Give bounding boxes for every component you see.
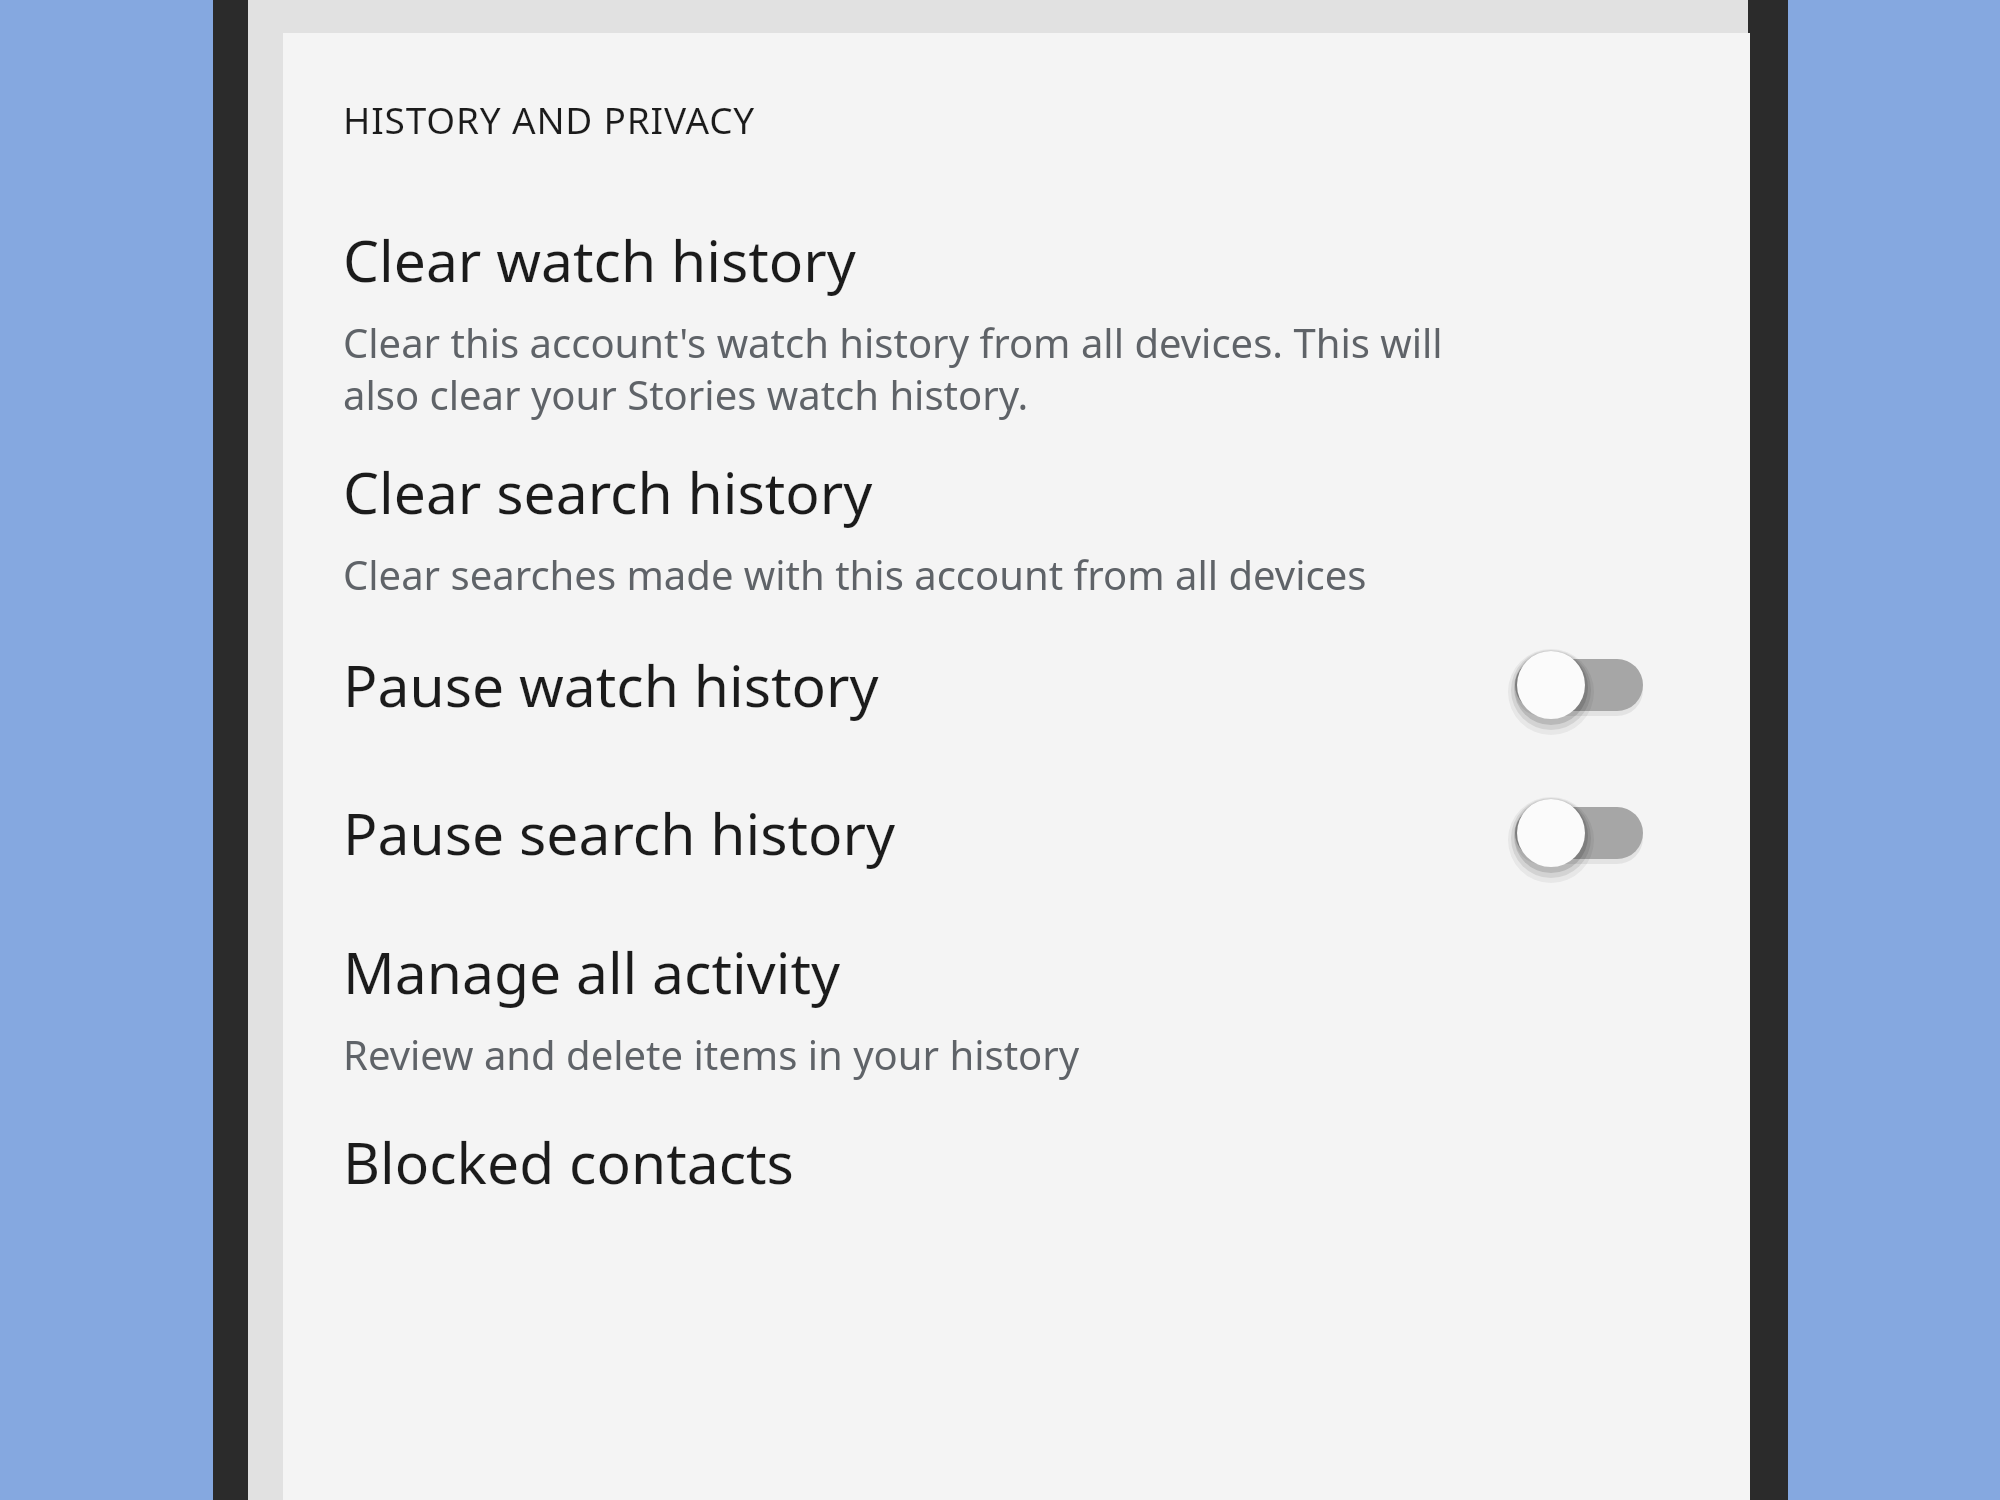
staticText: Manage all activity xyxy=(343,933,841,1011)
button[interactable]: Pause watch history xyxy=(1485,625,1675,745)
button[interactable]: Pause search history xyxy=(1485,773,1675,893)
staticText: Pause watch history xyxy=(343,646,879,724)
button[interactable]: Clear search history xyxy=(283,413,1750,603)
staticText: Clear searches made with this account fr… xyxy=(343,547,1367,601)
staticText: Clear this account's watch history from … xyxy=(343,315,1443,422)
button[interactable]: Clear watch history xyxy=(283,181,1750,421)
staticText: Review and delete items in your history xyxy=(343,1027,1080,1081)
staticText: HISTORY AND PRIVACY xyxy=(343,94,756,144)
button[interactable]: Blocked contacts xyxy=(283,1083,1750,1223)
staticText: Clear search history xyxy=(343,453,873,531)
staticText: Pause search history xyxy=(343,794,896,872)
staticText: Blocked contacts xyxy=(343,1123,794,1201)
button[interactable]: Pause watch history xyxy=(283,611,1750,759)
button[interactable]: Manage all activity xyxy=(283,893,1750,1083)
button[interactable]: Pause search history xyxy=(283,759,1750,907)
staticText: Clear watch history xyxy=(343,221,856,299)
